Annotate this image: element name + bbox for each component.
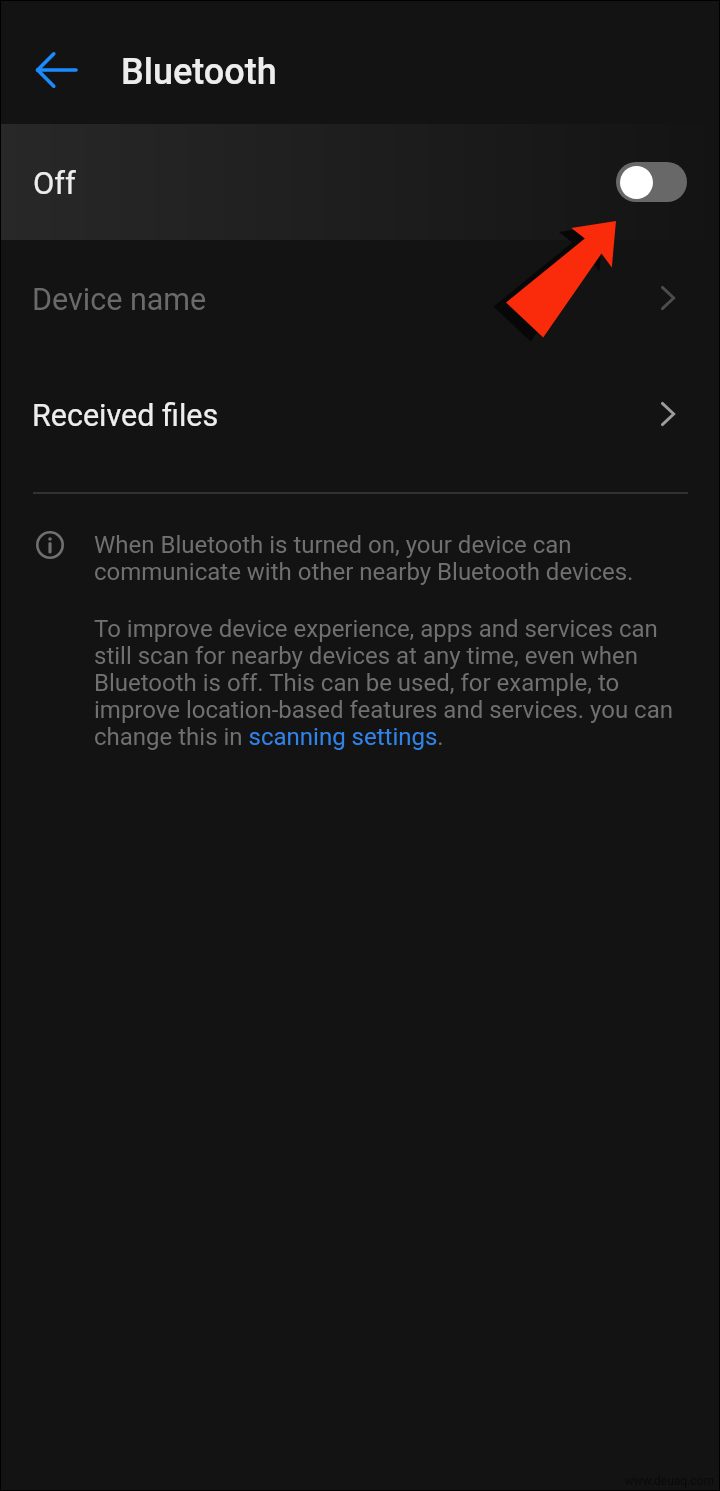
- button[interactable]: Device name: [0, 240, 720, 356]
- staticText: When Bluetooth is turned on, your device…: [94, 531, 690, 586]
- staticText: Bluetooth: [121, 51, 277, 93]
- staticText: Device name: [32, 282, 207, 318]
- staticText: Received files: [32, 398, 219, 434]
- button[interactable]: Off: [0, 124, 720, 240]
- staticText: Off: [33, 165, 76, 201]
- button[interactable]: Navigate back: [14, 26, 102, 114]
- button[interactable]: Bluetooth toggle, off: [616, 162, 687, 202]
- staticText: To improve device experience, apps and s…: [94, 615, 690, 751]
- button[interactable]: Received files: [0, 356, 720, 472]
